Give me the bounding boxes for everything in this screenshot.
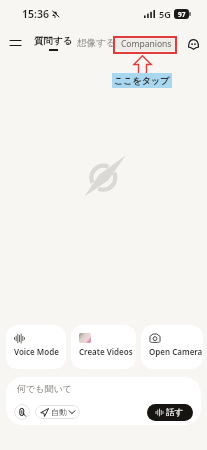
button[interactable]: Voice Mode	[6, 325, 66, 369]
button[interactable]: Companions	[114, 36, 179, 51]
staticText: 質問する	[34, 35, 73, 47]
staticText: Create Videos	[79, 346, 133, 357]
button[interactable]: Profile	[184, 35, 202, 53]
staticText: Companions	[121, 38, 172, 50]
staticText: Open Camera	[149, 346, 203, 357]
button[interactable]: 自動	[35, 405, 80, 419]
button[interactable]: Open Camera	[141, 325, 203, 369]
staticText: 97	[178, 10, 186, 19]
staticText: Voice Mode	[14, 346, 59, 357]
staticText: 何でも聞いて	[17, 383, 72, 394]
staticText: 5G	[159, 8, 171, 20]
staticText: ここをタップ	[114, 75, 170, 86]
button[interactable]: Attach file	[14, 404, 30, 420]
button[interactable]: 質問する	[34, 35, 73, 51]
staticText: 15:36	[22, 7, 49, 21]
staticText: 自動	[51, 407, 67, 417]
button[interactable]: 想像する	[77, 37, 116, 49]
button[interactable]: 話す	[147, 404, 193, 421]
button[interactable]: Menu	[5, 33, 25, 53]
button[interactable]: Create Videos	[71, 325, 136, 369]
staticText: 話す	[166, 407, 184, 418]
